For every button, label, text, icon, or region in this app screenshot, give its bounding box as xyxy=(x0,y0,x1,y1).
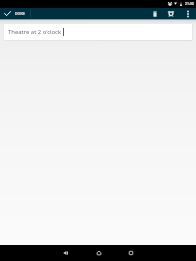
button[interactable]: More options xyxy=(182,8,193,19)
button[interactable]: Back xyxy=(59,245,72,261)
staticText: DONE xyxy=(15,11,26,16)
button[interactable]: DONE xyxy=(0,8,30,19)
button[interactable]: Home xyxy=(92,245,105,261)
staticText: 21:30 xyxy=(185,1,194,6)
button[interactable]: Theatre at 2 o'clock xyxy=(4,24,192,40)
staticText: Theatre at 2 o'clock xyxy=(8,28,62,36)
button[interactable]: Set alarm xyxy=(165,8,177,19)
button[interactable]: Recent apps xyxy=(124,245,137,261)
button[interactable]: Delete xyxy=(149,8,161,19)
